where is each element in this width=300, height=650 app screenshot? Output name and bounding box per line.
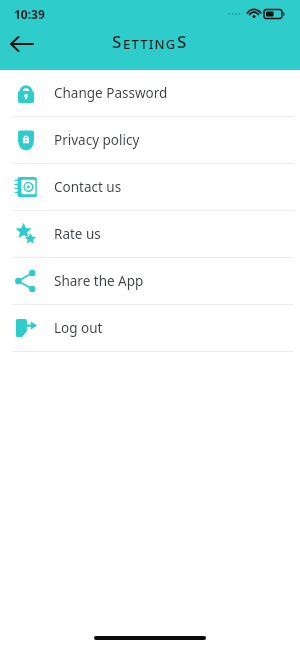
button[interactable]: Share the App [0, 258, 300, 304]
button[interactable]: Back [0, 22, 44, 66]
staticText: S [177, 30, 188, 53]
staticText: Change Password [54, 84, 168, 102]
staticText: Contact us [54, 178, 122, 196]
button[interactable]: Rate us [0, 211, 300, 257]
button[interactable]: Contact us [0, 164, 300, 210]
button[interactable]: Log out [0, 305, 300, 351]
staticText: Share the App [54, 272, 144, 290]
staticText: S [112, 30, 123, 53]
staticText: Rate us [54, 225, 101, 243]
staticText: 10:39 [14, 6, 45, 22]
staticText: Log out [54, 319, 103, 337]
staticText: Privacy policy [54, 131, 140, 149]
staticText: ETTING [123, 35, 177, 53]
button[interactable]: Change Password [0, 70, 300, 116]
button[interactable]: Privacy policy [0, 117, 300, 163]
